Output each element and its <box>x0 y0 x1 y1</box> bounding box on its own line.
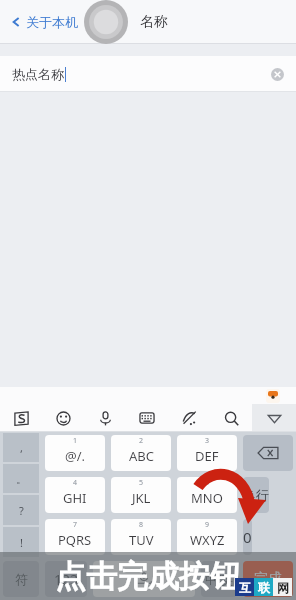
button[interactable]: Keyboard <box>126 404 168 432</box>
button[interactable]: 4 <box>45 477 105 513</box>
button[interactable]: 5 <box>111 477 171 513</box>
staticText: 热点名称 <box>12 66 64 82</box>
button[interactable]: Voice input <box>84 404 126 432</box>
button[interactable]: Clear text <box>271 68 284 81</box>
button[interactable]: 关于本机 <box>6 10 82 34</box>
button[interactable]: 热点名称 <box>0 56 296 92</box>
button[interactable]: Hide keyboard <box>252 404 296 432</box>
button[interactable]: 中/英 <box>201 561 237 597</box>
staticText: DEF <box>195 447 219 465</box>
staticText: 5 <box>139 478 144 488</box>
button[interactable]: 换行 <box>243 477 269 513</box>
button[interactable]: 。 <box>3 464 39 493</box>
button[interactable]: 6 <box>177 477 237 513</box>
staticText: 符 <box>15 571 28 587</box>
staticText: 0 <box>243 527 252 547</box>
staticText: 123 <box>54 570 79 589</box>
button[interactable]: , <box>3 433 39 462</box>
button[interactable]: 3 <box>177 435 237 471</box>
button[interactable]: 完成 <box>243 561 293 597</box>
staticText: 中/英 <box>205 571 234 587</box>
staticText: 7 <box>73 520 78 530</box>
staticText: 3 <box>205 436 210 446</box>
staticText: TUV <box>129 531 154 549</box>
staticText: 网 <box>277 580 289 595</box>
staticText: 8 <box>139 520 144 530</box>
button[interactable]: Backspace <box>243 435 293 471</box>
staticText: PQRS <box>58 531 92 549</box>
button[interactable]: 7 <box>45 519 105 555</box>
staticText: 4 <box>73 478 78 488</box>
staticText: 。 <box>16 472 27 486</box>
button[interactable]: 123 <box>45 561 87 597</box>
button[interactable]: 1 <box>45 435 105 471</box>
staticText: 6 <box>205 478 210 488</box>
staticText: MNO <box>191 489 223 507</box>
staticText: ABC <box>129 447 154 465</box>
staticText: 点击完成按钮 <box>55 557 241 596</box>
staticText: 联 <box>258 580 270 595</box>
staticText: 9 <box>205 520 210 530</box>
button[interactable]: Space <box>93 561 195 597</box>
button[interactable]: 符 <box>3 561 39 597</box>
staticText: 完成 <box>254 570 282 588</box>
button[interactable]: 2 <box>111 435 171 471</box>
button[interactable]: 8 <box>111 519 171 555</box>
staticText: GHI <box>63 489 87 507</box>
button[interactable]: 9 <box>177 519 237 555</box>
staticText: 2 <box>139 436 144 446</box>
staticText: @/. <box>65 447 86 465</box>
staticText: ! <box>20 535 23 550</box>
button[interactable]: ! <box>3 527 39 557</box>
staticText: ? <box>19 503 24 518</box>
staticText: 名称 <box>140 13 168 31</box>
staticText: WXYZ <box>190 531 225 549</box>
button[interactable]: Search <box>210 404 252 432</box>
staticText: JKL <box>132 489 151 507</box>
staticText: 互 <box>239 580 251 595</box>
staticText: , <box>20 440 23 455</box>
staticText: 1 <box>73 436 78 446</box>
staticText: 换行 <box>243 487 269 503</box>
button[interactable]: ? <box>3 495 39 525</box>
button[interactable]: 0 <box>243 519 252 555</box>
staticText: 关于本机 <box>26 14 78 30</box>
button[interactable]: Emoji <box>42 404 84 432</box>
button[interactable]: Handwriting <box>168 404 210 432</box>
button[interactable]: Sogou input <box>0 404 42 432</box>
